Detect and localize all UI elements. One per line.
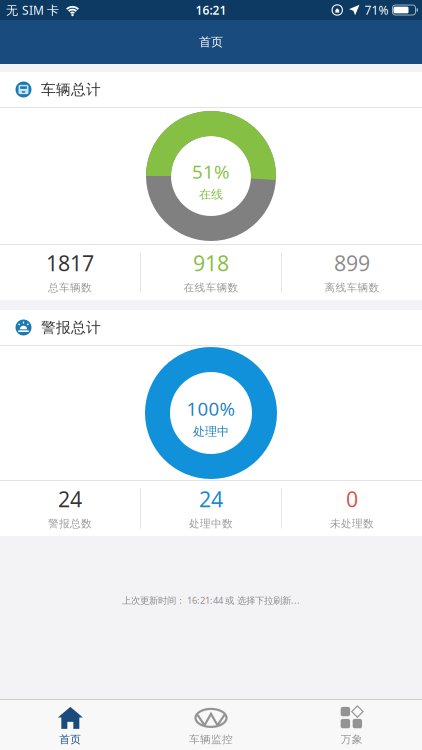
staticText: 51% (192, 159, 230, 184)
button[interactable]: 万象 (281, 706, 422, 746)
staticText: 车辆总计 (41, 80, 101, 98)
staticText: 在线车辆数 (183, 281, 238, 294)
staticText: 首页 (59, 733, 81, 746)
staticText: 24 (199, 485, 223, 513)
staticText: 未处理数 (330, 517, 374, 530)
staticText: 0 (346, 485, 358, 513)
staticText: 1817 (46, 249, 94, 277)
staticText: 899 (334, 249, 370, 277)
staticText: 918 (193, 249, 229, 277)
staticText: 无 SIM 卡 (6, 2, 59, 18)
staticText: 上次更新时间： 16:21:44 或 选择下拉刷新... (122, 594, 300, 606)
staticText: 首页 (199, 35, 223, 49)
staticText: 处理中数 (189, 517, 233, 530)
staticText: 100% (186, 396, 235, 421)
button[interactable]: 车辆监控 (141, 706, 281, 746)
staticText: 警报总数 (48, 517, 92, 530)
staticText: 车辆监控 (189, 733, 233, 746)
staticText: 24 (58, 485, 82, 513)
staticText: 在线 (199, 187, 223, 202)
staticText: 万象 (341, 733, 363, 746)
staticText: 离线车辆数 (324, 281, 379, 294)
staticText: 处理中 (193, 424, 229, 439)
staticText: 16:21 (195, 2, 226, 18)
button[interactable]: 首页 (0, 706, 141, 746)
staticText: 71% (364, 2, 388, 18)
staticText: 总车辆数 (48, 281, 92, 294)
staticText: 警报总计 (41, 318, 101, 336)
